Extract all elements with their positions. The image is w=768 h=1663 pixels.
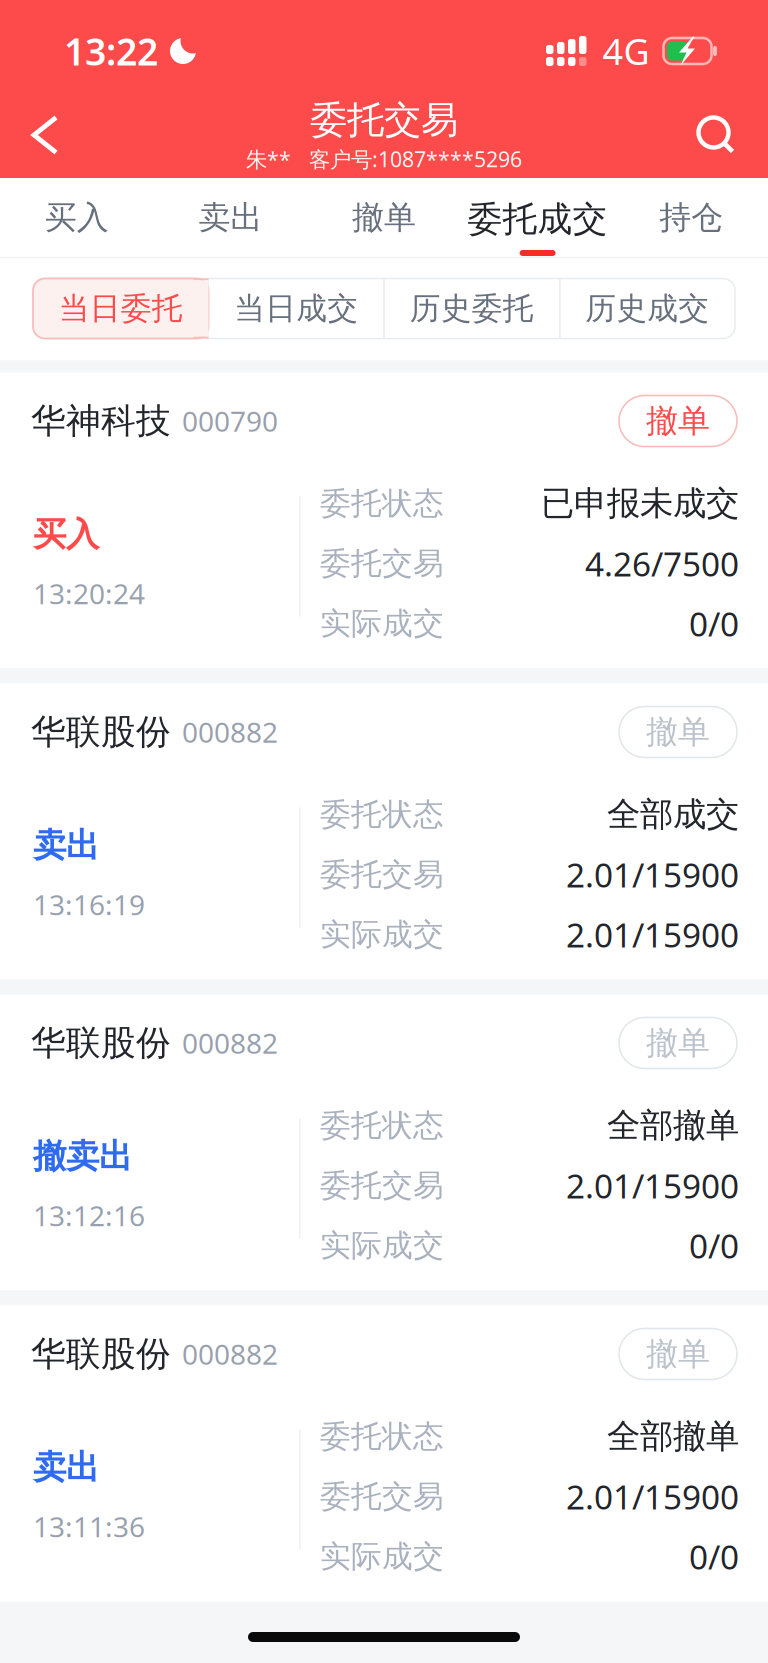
button[interactable]: 撤单 <box>619 395 737 446</box>
staticText: 000882 <box>182 713 278 751</box>
staticText: 委托交易 <box>320 1478 444 1515</box>
staticText: 委托状态 <box>320 1418 444 1455</box>
button[interactable]: 撤单 <box>619 706 737 757</box>
staticText: 撤单 <box>352 198 416 237</box>
staticText: 历史成交 <box>585 290 709 327</box>
staticText: 委托交易 <box>310 97 458 143</box>
staticText: 13:22 <box>64 26 158 76</box>
staticText: 2.01/15900 <box>566 852 739 897</box>
button[interactable]: 撤单 <box>619 1328 737 1379</box>
button[interactable]: Back <box>3 92 87 178</box>
button[interactable]: 历史委托 <box>384 278 559 338</box>
staticText: 实际成交 <box>320 605 444 642</box>
button[interactable]: 撤单 <box>619 1017 737 1068</box>
staticText: 持仓 <box>659 198 723 237</box>
staticText: 13:11:36 <box>33 1508 145 1545</box>
staticText: 全部撤单 <box>607 1105 739 1146</box>
staticText: 0/0 <box>689 1534 739 1579</box>
staticText: 000882 <box>182 1024 278 1062</box>
staticText: 华神科技 <box>31 400 171 442</box>
button[interactable]: 买入 <box>0 178 154 257</box>
staticText: 13:12:16 <box>33 1197 145 1234</box>
staticText: 撤单 <box>646 1334 710 1374</box>
staticText: 华联股份 <box>31 1022 171 1064</box>
staticText: 买入 <box>45 198 109 237</box>
staticText: 撤单 <box>646 1023 710 1063</box>
staticText: 4.26/7500 <box>585 541 739 586</box>
staticText: 撤单 <box>646 712 710 752</box>
staticText: 卖出 <box>198 198 262 237</box>
button[interactable]: Search <box>674 92 758 178</box>
staticText: 2.01/15900 <box>566 1474 739 1519</box>
button[interactable]: 当日委托 <box>33 278 208 338</box>
staticText: 实际成交 <box>320 1227 444 1264</box>
button[interactable]: 当日成交 <box>208 278 384 338</box>
staticText: 华联股份 <box>31 711 171 753</box>
staticText: 当日委托 <box>59 290 183 327</box>
staticText: 4G <box>602 27 649 75</box>
staticText: 朱** 客户号:1087****5296 <box>246 145 522 173</box>
staticText: 买入 <box>33 514 99 555</box>
staticText: 000790 <box>182 402 278 440</box>
staticText: 已申报未成交 <box>541 483 739 524</box>
staticText: 0/0 <box>689 601 739 646</box>
staticText: 委托交易 <box>320 856 444 893</box>
staticText: 委托成交 <box>468 198 608 241</box>
staticText: 撤卖出 <box>33 1136 132 1177</box>
staticText: 委托交易 <box>320 545 444 582</box>
staticText: 实际成交 <box>320 1538 444 1575</box>
staticText: 华联股份 <box>31 1333 171 1375</box>
staticText: 2.01/15900 <box>566 1163 739 1208</box>
staticText: 委托状态 <box>320 1107 444 1144</box>
staticText: 全部成交 <box>607 794 739 835</box>
staticText: 实际成交 <box>320 916 444 953</box>
button[interactable]: 委托成交 <box>461 178 614 257</box>
button[interactable]: 历史成交 <box>559 278 735 338</box>
staticText: 13:16:19 <box>33 886 145 923</box>
staticText: 当日成交 <box>234 290 358 327</box>
staticText: 13:20:24 <box>33 575 145 612</box>
staticText: 2.01/15900 <box>566 912 739 957</box>
staticText: 历史委托 <box>410 290 534 327</box>
staticText: 卖出 <box>33 1447 99 1488</box>
staticText: 撤单 <box>646 401 710 441</box>
staticText: 卖出 <box>33 825 99 866</box>
staticText: 000882 <box>182 1335 278 1373</box>
button[interactable]: 撤单 <box>307 178 461 257</box>
staticText: 委托交易 <box>320 1167 444 1204</box>
staticText: 委托状态 <box>320 485 444 522</box>
staticText: 全部撤单 <box>607 1416 739 1457</box>
button[interactable]: 卖出 <box>154 178 307 257</box>
staticText: 0/0 <box>689 1223 739 1268</box>
button[interactable]: 持仓 <box>614 178 768 257</box>
staticText: 委托状态 <box>320 796 444 833</box>
